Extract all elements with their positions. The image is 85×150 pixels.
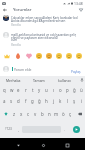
staticText: Cakcaklar erken saygı Akdeni Kartı banka… <box>11 16 78 20</box>
staticText: efinitli ve paylasım aterctiltonaltD <box>11 36 59 40</box>
button[interactable]: ğ <box>71 84 78 95</box>
button[interactable]: Back <box>12 139 24 150</box>
button[interactable]: ğ <box>36 95 43 107</box>
staticText: . <box>64 127 65 132</box>
button[interactable]: c <box>25 107 32 120</box>
staticText: Acıkta #bundesliga #Agentlerdrschsen <box>11 19 66 23</box>
staticText: u <box>45 87 48 93</box>
button[interactable]: Paylaş <box>70 70 82 74</box>
button[interactable]: b <box>39 107 46 120</box>
staticText: cüm <box>11 38 18 42</box>
button[interactable]: Sort comments <box>76 6 85 14</box>
button[interactable]: Voice input <box>78 76 85 84</box>
staticText: c <box>27 111 30 117</box>
button[interactable]: Emoji reaction <box>34 51 44 60</box>
button[interactable]: Recents <box>61 139 73 150</box>
staticText: Paylaş <box>71 70 81 74</box>
button[interactable]: ş <box>71 95 78 107</box>
button[interactable]: Cakcaklar erken saygı Akdeni Kartı banka… <box>0 15 85 28</box>
button[interactable]: l <box>64 95 71 107</box>
staticText: Yorum ekle <box>14 67 32 71</box>
staticText: ç <box>69 111 72 117</box>
button[interactable]: v <box>32 107 39 120</box>
staticText: maELpekSonuclaritsasid ve cok hazardan g… <box>11 33 77 37</box>
button[interactable]: ı <box>50 84 57 95</box>
button[interactable]: Emoji reaction <box>1 51 12 60</box>
button[interactable]: r <box>22 84 29 95</box>
button[interactable]: u <box>43 84 50 95</box>
staticText: e <box>17 87 20 93</box>
button[interactable]: y <box>36 84 43 95</box>
staticText: ğ <box>73 87 76 93</box>
button[interactable]: s <box>8 95 15 107</box>
button[interactable]: d <box>15 95 22 107</box>
button[interactable]: Yorum ekle <box>12 65 70 72</box>
button[interactable]: Send <box>68 123 84 135</box>
button[interactable]: z <box>11 107 18 120</box>
button[interactable]: Emoji reaction <box>23 51 34 60</box>
button[interactable]: k <box>57 95 64 107</box>
staticText: ğ <box>38 98 41 104</box>
button[interactable]: q <box>0 84 8 95</box>
button[interactable]: a <box>0 95 8 107</box>
button[interactable]: Emoji reaction <box>74 51 84 60</box>
button[interactable]: w <box>8 84 15 95</box>
button[interactable]: p <box>64 84 71 95</box>
button[interactable]: Yanıtla <box>11 23 21 27</box>
staticText: ?123 <box>5 127 12 131</box>
button[interactable]: e <box>15 84 22 95</box>
button[interactable]: f <box>22 95 29 107</box>
button[interactable]: ç <box>67 107 74 120</box>
button[interactable]: Backspace <box>74 107 85 120</box>
staticText: q <box>3 87 6 93</box>
button[interactable]: maELpekSonuclaritsasid ve cok hazardan g… <box>0 32 85 50</box>
button[interactable]: Shift <box>0 107 11 120</box>
staticText: k <box>59 98 62 104</box>
button[interactable]: Merhaba <box>0 76 26 84</box>
staticText: Merhaba <box>6 78 21 83</box>
staticText: ü <box>80 87 83 93</box>
button[interactable]: kullanıcı <box>52 76 78 84</box>
button[interactable]: Back <box>0 6 10 14</box>
staticText: Yanıtla <box>11 43 21 47</box>
staticText: Yanıtla <box>11 23 21 27</box>
staticText: r <box>25 87 27 93</box>
staticText: h <box>45 98 48 104</box>
button[interactable]: ü <box>78 84 85 95</box>
button[interactable]: h <box>43 95 50 107</box>
button[interactable]: i <box>78 95 85 107</box>
staticText: o <box>59 87 62 93</box>
button[interactable]: n <box>46 107 53 120</box>
button[interactable]: j <box>50 95 57 107</box>
button[interactable]: Tamam <box>26 76 52 84</box>
staticText: f <box>25 98 27 104</box>
button[interactable]: ö <box>60 107 67 120</box>
staticText: s <box>10 98 13 104</box>
staticText: z <box>13 111 16 117</box>
button[interactable]: x <box>18 107 25 120</box>
staticText: w <box>10 87 14 93</box>
button[interactable]: Symbols <box>1 123 15 135</box>
button[interactable]: g <box>29 95 36 107</box>
button[interactable]: m <box>53 107 60 120</box>
button[interactable]: Emoji reaction <box>12 51 23 60</box>
button[interactable]: o <box>57 84 64 95</box>
staticText: p <box>66 87 69 93</box>
staticText: ı <box>53 87 55 93</box>
button[interactable]: Emoji reaction <box>54 51 64 60</box>
button[interactable]: Comma <box>15 123 22 135</box>
staticText: x <box>20 111 23 117</box>
button[interactable]: Home <box>37 139 49 150</box>
staticText: kullanıcı <box>58 78 72 83</box>
staticText: b <box>41 111 44 117</box>
button[interactable]: Yanıtla <box>11 43 21 47</box>
button[interactable]: t <box>29 84 36 95</box>
staticText: y <box>38 87 41 93</box>
staticText: , <box>18 127 19 132</box>
button[interactable]: Emoji reaction <box>64 51 74 60</box>
staticText: g <box>31 98 34 104</box>
staticText: a <box>3 98 6 104</box>
button[interactable]: Emoji reaction <box>44 51 54 60</box>
